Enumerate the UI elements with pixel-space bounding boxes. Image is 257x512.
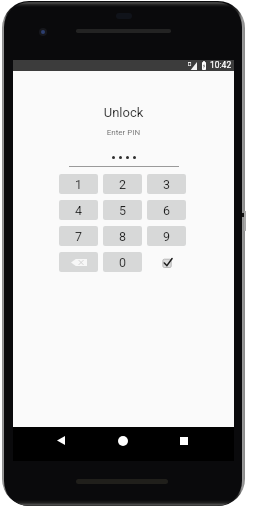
button[interactable]: 3 xyxy=(147,174,186,194)
button[interactable]: 1 xyxy=(59,174,98,194)
button[interactable]: 6 xyxy=(147,200,186,220)
button[interactable]: 8 xyxy=(103,226,142,246)
button[interactable]: 9 xyxy=(147,226,186,246)
button[interactable]: 0 xyxy=(103,252,142,272)
button[interactable]: 4 xyxy=(59,200,98,220)
button[interactable]: Home xyxy=(111,427,135,454)
button[interactable]: Recent apps xyxy=(172,427,196,454)
staticText: 5 xyxy=(119,203,127,218)
staticText: 8 xyxy=(119,229,127,244)
button[interactable]: 5 xyxy=(103,200,142,220)
staticText: 0 xyxy=(119,255,127,270)
button[interactable]: 7 xyxy=(59,226,98,246)
staticText: 2 xyxy=(119,177,127,192)
button[interactable]: Back xyxy=(49,427,73,454)
staticText: 7 xyxy=(75,229,83,244)
staticText: 9 xyxy=(163,229,171,244)
staticText: Unlock xyxy=(13,105,234,120)
staticText: 4 xyxy=(75,203,83,218)
staticText: Enter PIN xyxy=(13,128,234,137)
staticText: 6 xyxy=(163,203,171,218)
button[interactable]: Backspace xyxy=(59,252,98,272)
staticText: 3 xyxy=(163,177,171,192)
button[interactable]: 2 xyxy=(103,174,142,194)
button[interactable]: Enter xyxy=(147,252,186,272)
staticText: 10:42 xyxy=(210,60,232,70)
staticText: 1 xyxy=(75,177,83,192)
